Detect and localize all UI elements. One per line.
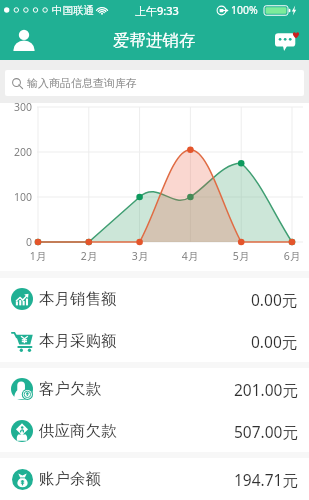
staticText: 本月采购额: [39, 331, 117, 351]
staticText: 输入商品信息查询库存: [27, 76, 137, 90]
staticText: 1月: [20, 249, 56, 263]
staticText: 上午9:33: [135, 3, 179, 18]
staticText: 5月: [223, 249, 259, 263]
staticText: 194.71元: [234, 469, 298, 490]
staticText: 2月: [71, 249, 107, 263]
staticText: 6月: [274, 249, 309, 263]
staticText: 0: [0, 235, 32, 249]
staticText: 3月: [122, 249, 158, 263]
button[interactable]: 本月采购额: [0, 320, 309, 362]
button[interactable]: 输入商品信息查询库存: [5, 70, 304, 96]
staticText: 供应商欠款: [39, 421, 117, 441]
staticText: 100: [0, 190, 32, 204]
staticText: 4月: [172, 249, 208, 263]
staticText: 200: [0, 145, 32, 159]
button[interactable]: Messages: [274, 23, 300, 57]
staticText: 507.00元: [234, 421, 298, 442]
staticText: 100%: [231, 3, 258, 17]
staticText: 客户欠款: [39, 379, 101, 399]
staticText: 中国联通: [52, 4, 94, 17]
staticText: 爱帮进销存: [113, 30, 196, 51]
button[interactable]: 账户余额: [0, 458, 309, 500]
button[interactable]: 供应商欠款: [0, 410, 309, 452]
staticText: 300: [0, 100, 32, 114]
button[interactable]: Profile: [9, 23, 39, 57]
staticText: 0.00元: [251, 289, 298, 310]
staticText: 本月销售额: [39, 289, 117, 309]
staticText: 201.00元: [234, 379, 298, 400]
button[interactable]: 客户欠款: [0, 368, 309, 410]
button[interactable]: 本月销售额: [0, 278, 309, 320]
staticText: 0.00元: [251, 331, 298, 352]
staticText: 账户余额: [39, 469, 101, 489]
